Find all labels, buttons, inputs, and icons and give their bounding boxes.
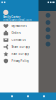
button[interactable]: Recent apps [40, 92, 48, 100]
button[interactable]: Privacy Policy [0, 57, 38, 64]
staticText: emily.carter@mail.com [3, 18, 31, 22]
staticText: Share our app [11, 45, 30, 49]
staticText: Emily Carter [3, 15, 20, 19]
staticText: Orders [11, 31, 20, 35]
button[interactable]: Home [24, 92, 32, 100]
staticText: My Favorites [11, 24, 26, 28]
staticText: Privacy Policy [11, 59, 28, 63]
staticText: Contact us [11, 38, 25, 42]
staticText: Rate our app [11, 52, 29, 56]
button[interactable]: My Favorites [0, 22, 38, 29]
button[interactable]: Orders [0, 29, 38, 36]
button[interactable]: Rate our app [0, 50, 38, 57]
button[interactable]: Contact us [0, 36, 38, 43]
button[interactable]: Share our app [0, 43, 38, 50]
button[interactable]: Back [8, 92, 16, 100]
